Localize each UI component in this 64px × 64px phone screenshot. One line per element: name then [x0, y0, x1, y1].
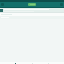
- button[interactable]: [0, 13, 64, 16]
- button[interactable]: [28, 3, 36, 6]
- button[interactable]: [0, 8, 64, 12]
